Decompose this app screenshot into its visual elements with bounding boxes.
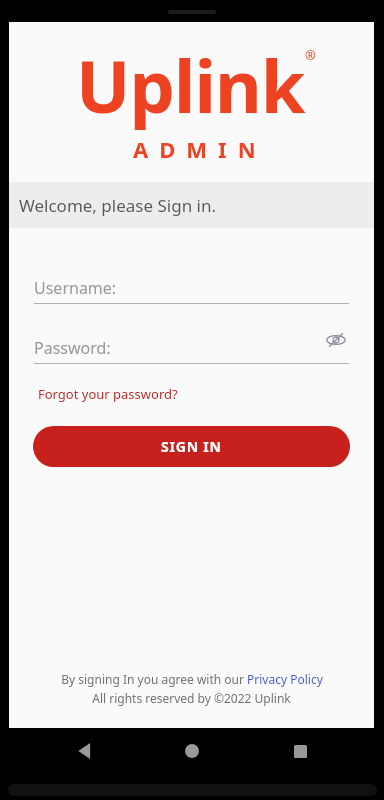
staticText: By signing In you agree with our Privacy…	[61, 671, 323, 687]
button[interactable]: SIGN IN	[33, 426, 350, 467]
staticText: ®	[305, 46, 316, 64]
staticText: SIGN IN	[161, 437, 222, 456]
staticText: All rights reserved by ©2022 Uplink	[92, 690, 291, 706]
button[interactable]: Home	[169, 728, 215, 774]
button[interactable]: Password:	[34, 334, 349, 364]
button[interactable]: Back	[62, 728, 108, 774]
staticText: Welcome, please Sign in.	[19, 194, 217, 217]
button[interactable]: Recent apps	[277, 728, 323, 774]
button[interactable]: Show password	[323, 327, 349, 353]
staticText: ADMIN	[133, 134, 267, 164]
staticText: Password:	[34, 337, 111, 359]
button[interactable]: Username:	[34, 274, 349, 304]
staticText: Forgot your password?	[38, 385, 178, 403]
staticText: Uplink	[76, 36, 305, 134]
staticText: Username:	[34, 277, 117, 299]
button[interactable]: Forgot your password?	[34, 382, 182, 406]
button[interactable]: By signing In you agree with our Privacy…	[55, 670, 329, 688]
